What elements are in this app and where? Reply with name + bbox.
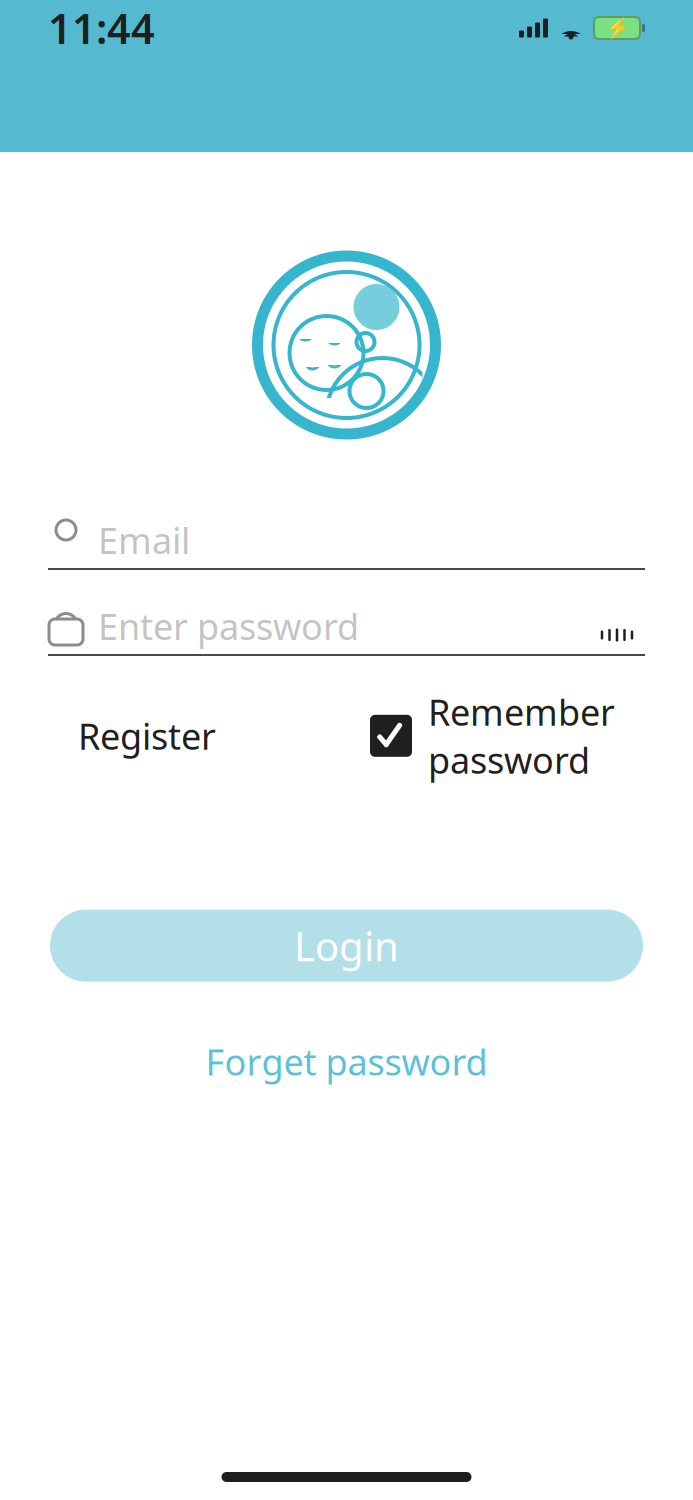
staticText: Enter password — [98, 602, 359, 650]
button[interactable]: Register — [78, 704, 216, 768]
staticText: 11:44 — [48, 1, 155, 55]
staticText: Email — [98, 516, 190, 564]
button[interactable]: Show password — [589, 604, 645, 648]
staticText: Remember password — [428, 688, 615, 784]
staticText: Login — [294, 919, 399, 972]
button[interactable]: Forget password — [189, 1030, 503, 1093]
button[interactable]: Remember password — [370, 682, 615, 790]
staticText: Forget password — [205, 1038, 487, 1085]
staticText: Register — [78, 712, 216, 760]
staticText: ⚡ — [604, 17, 629, 39]
button[interactable]: Login — [50, 910, 643, 982]
